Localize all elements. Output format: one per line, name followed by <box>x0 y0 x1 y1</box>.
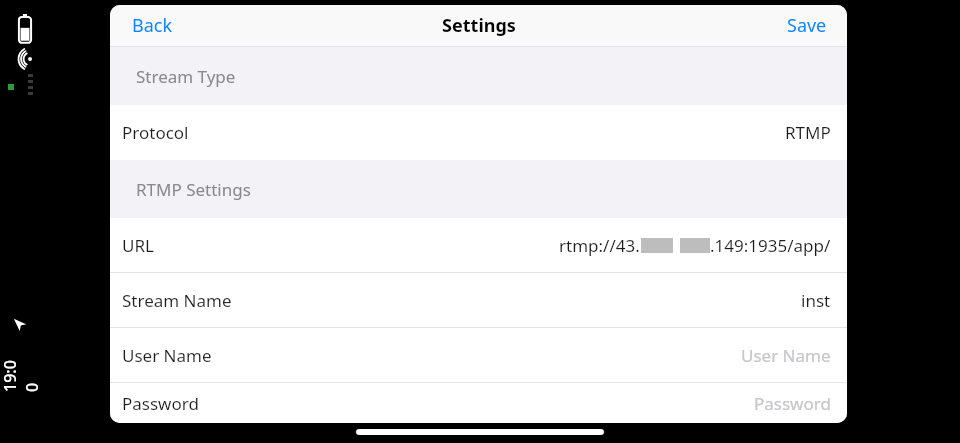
staticText: User Name <box>122 344 212 367</box>
staticText: RTMP Settings <box>136 178 251 201</box>
staticText: Back <box>132 13 173 38</box>
staticText: Settings <box>442 13 516 38</box>
staticText: Password <box>754 392 831 415</box>
staticText: Password <box>122 392 199 415</box>
other: Home indicator <box>356 429 604 435</box>
staticText: RTMP <box>785 121 831 144</box>
staticText: 19:00 <box>0 358 43 392</box>
staticText: rtmp://43. <box>559 234 640 257</box>
button[interactable]: Back <box>110 5 195 46</box>
staticText: Stream Name <box>122 289 232 312</box>
staticText: Protocol <box>122 121 189 144</box>
button[interactable]: User Name <box>110 328 847 383</box>
staticText: inst <box>801 289 831 312</box>
staticText: User Name <box>741 344 831 367</box>
staticText: URL <box>122 234 154 257</box>
button[interactable]: Save <box>767 5 847 46</box>
staticText: .149:1935/app/ <box>710 234 831 257</box>
staticText: Save <box>787 13 827 38</box>
button[interactable]: Password <box>110 383 847 423</box>
button[interactable]: URL <box>110 218 847 273</box>
button[interactable]: Protocol <box>110 105 847 160</box>
staticText: Stream Type <box>136 65 236 88</box>
button[interactable]: Stream Name <box>110 273 847 328</box>
